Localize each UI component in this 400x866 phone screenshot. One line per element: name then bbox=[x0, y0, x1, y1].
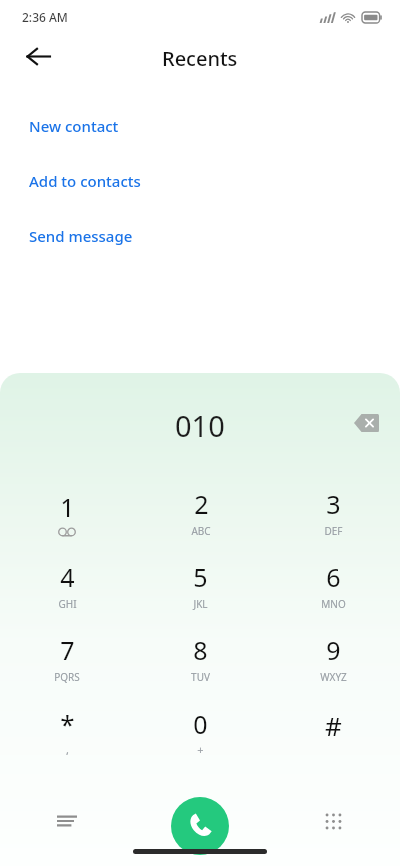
button[interactable]: Backspace bbox=[344, 401, 388, 445]
staticText: * bbox=[60, 706, 75, 741]
staticText: ABC bbox=[191, 524, 211, 538]
staticText: Send message bbox=[29, 226, 133, 246]
staticText: 0 bbox=[193, 707, 208, 741]
button[interactable]: 9 bbox=[267, 622, 400, 695]
staticText: 2:36 AM bbox=[22, 9, 68, 25]
button[interactable]: Send message bbox=[0, 208, 400, 263]
staticText: DEF bbox=[324, 524, 343, 538]
staticText: 3 bbox=[326, 487, 341, 521]
staticText: TUV bbox=[191, 670, 210, 684]
staticText: 010 bbox=[175, 406, 225, 445]
button[interactable]: # bbox=[267, 695, 400, 768]
button[interactable]: 7 bbox=[0, 622, 134, 695]
staticText: 5 bbox=[193, 560, 208, 594]
staticText: 9 bbox=[326, 633, 341, 667]
staticText: # bbox=[325, 708, 342, 743]
staticText: WXYZ bbox=[320, 670, 347, 684]
staticText: GHI bbox=[58, 597, 77, 611]
staticText: 7 bbox=[60, 633, 75, 667]
staticText: 2 bbox=[194, 487, 209, 521]
staticText: PQRS bbox=[54, 670, 80, 684]
button[interactable]: 0 bbox=[134, 695, 267, 768]
button[interactable]: 4 bbox=[0, 549, 134, 622]
staticText: Recents bbox=[162, 45, 238, 72]
button[interactable]: 3 bbox=[267, 476, 400, 549]
staticText: 4 bbox=[60, 560, 75, 594]
button[interactable]: New contact bbox=[0, 98, 400, 153]
staticText: MNO bbox=[321, 597, 346, 611]
staticText: New contact bbox=[29, 116, 119, 136]
button[interactable]: 2 bbox=[134, 476, 267, 549]
button[interactable]: 6 bbox=[267, 549, 400, 622]
button[interactable]: Back bbox=[14, 32, 62, 80]
staticText: Add to contacts bbox=[29, 171, 141, 191]
button[interactable]: Add to contacts bbox=[0, 153, 400, 208]
button[interactable]: 5 bbox=[134, 549, 267, 622]
button[interactable]: Call bbox=[171, 797, 229, 855]
staticText: 6 bbox=[326, 560, 341, 594]
button[interactable]: 8 bbox=[134, 622, 267, 695]
staticText: 1 bbox=[60, 490, 75, 524]
button[interactable]: Call log bbox=[43, 797, 91, 845]
staticText: , bbox=[66, 742, 69, 757]
button[interactable]: * bbox=[0, 695, 134, 768]
staticText: 8 bbox=[193, 633, 208, 667]
staticText: JKL bbox=[193, 597, 208, 611]
staticText: + bbox=[197, 742, 204, 757]
button[interactable]: 1 bbox=[0, 476, 134, 549]
button[interactable]: Keypad bbox=[309, 797, 357, 845]
